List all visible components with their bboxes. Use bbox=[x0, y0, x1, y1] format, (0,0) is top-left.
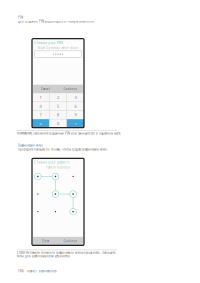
staticText: 5 bbox=[57, 103, 59, 109]
button[interactable]: Continue bbox=[58, 237, 83, 245]
staticText: 2 bbox=[57, 95, 59, 100]
staticText: Clear bbox=[42, 239, 49, 243]
button[interactable]: 8 bbox=[49, 111, 66, 119]
staticText: x bbox=[40, 121, 42, 126]
button[interactable]: Cancel bbox=[33, 85, 58, 93]
button[interactable]: 0 bbox=[49, 119, 66, 128]
staticText: 106 bbox=[18, 269, 24, 273]
button[interactable]: Clear bbox=[33, 237, 58, 245]
staticText: 9 bbox=[74, 112, 76, 117]
staticText: Pattern recorded bbox=[46, 166, 70, 169]
staticText: Глава 5 Безопасность bbox=[27, 269, 56, 273]
button[interactable]: Continue bbox=[58, 85, 83, 93]
staticText: 8 bbox=[57, 112, 59, 117]
button[interactable]: x bbox=[32, 119, 49, 128]
staticText: Choose your pattern bbox=[34, 159, 69, 165]
staticText: 6 bbox=[74, 103, 76, 109]
button[interactable]: 3 bbox=[67, 93, 84, 102]
staticText: Cancel bbox=[41, 87, 50, 91]
staticText: СОВЕТ Не памяти сложного графического кл… bbox=[17, 251, 115, 254]
staticText: Continue bbox=[63, 87, 77, 91]
staticText: 4 bbox=[40, 103, 42, 109]
button[interactable]: 5 bbox=[49, 102, 66, 110]
staticText: 3 bbox=[74, 95, 76, 100]
button[interactable]: > bbox=[67, 119, 84, 128]
staticText: ВНИМАНИЕ Запомните созданный PIN или зап… bbox=[17, 132, 121, 135]
staticText: Continue bbox=[63, 239, 77, 243]
staticText: Touch Continue when done bbox=[37, 46, 78, 50]
staticText: Графический ключ bbox=[18, 144, 43, 147]
button[interactable]: 7 bbox=[32, 111, 49, 119]
staticText: > bbox=[74, 121, 76, 126]
staticText: ключ для разблокировки устройства. bbox=[17, 254, 70, 258]
staticText: 7 bbox=[40, 112, 42, 117]
staticText: 0 bbox=[57, 121, 59, 126]
staticText: Choose your PIN bbox=[34, 40, 63, 45]
staticText: Для создания PIN-кода введите от четырёх… bbox=[18, 20, 95, 23]
button[interactable]: 2 bbox=[49, 93, 66, 102]
staticText: PIN bbox=[18, 16, 23, 19]
button[interactable]: 6 bbox=[67, 102, 84, 110]
staticText: Проведите пальцем по точкам, чтобы созда… bbox=[18, 148, 108, 151]
button[interactable]: 1 bbox=[32, 93, 49, 102]
button[interactable]: 9 bbox=[67, 111, 84, 119]
staticText: 1 bbox=[40, 95, 42, 100]
button[interactable]: 4 bbox=[32, 102, 49, 110]
